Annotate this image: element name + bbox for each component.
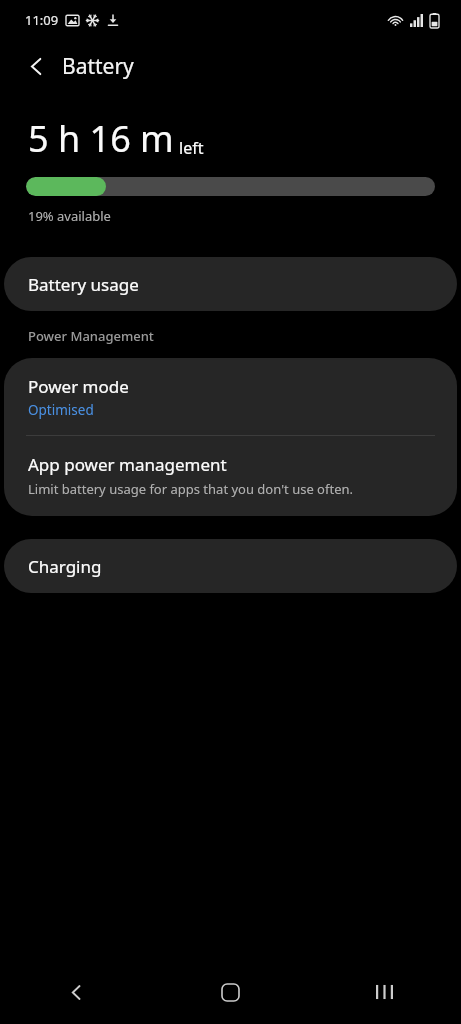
staticText: Battery usage [28, 273, 139, 296]
staticText: 19% available [28, 207, 111, 225]
staticText: Limit battery usage for apps that you do… [28, 480, 353, 498]
button[interactable]: Home [153, 960, 307, 1024]
button[interactable]: Back [0, 960, 153, 1024]
button[interactable]: Power mode [4, 358, 457, 435]
staticText: App power management [28, 453, 227, 476]
staticText: Battery [62, 52, 134, 81]
button[interactable]: Recent apps [307, 960, 461, 1024]
staticText: Charging [28, 555, 102, 578]
button[interactable]: App power management [4, 436, 457, 516]
button[interactable]: Back [14, 44, 58, 88]
button[interactable]: Battery usage [4, 257, 457, 311]
staticText: Optimised [28, 401, 94, 419]
button[interactable]: Charging [4, 539, 457, 593]
staticText: Power mode [28, 375, 129, 398]
staticText: left [179, 137, 204, 159]
staticText: Power Management [28, 327, 154, 345]
staticText: 5 h 16 m [28, 114, 174, 163]
staticText: 11:09 [25, 11, 59, 29]
